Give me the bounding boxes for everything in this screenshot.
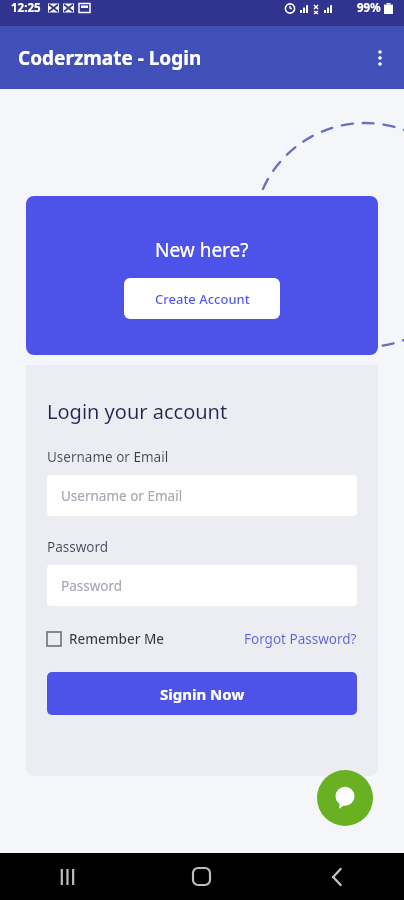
staticText: Coderzmate - Login (18, 45, 202, 71)
button[interactable]: Back (269, 853, 404, 900)
button[interactable]: Forgot Password? (244, 630, 357, 648)
button[interactable]: Remember Me (47, 630, 165, 648)
staticText: Login your account (47, 398, 228, 425)
staticText: Password (61, 577, 123, 595)
button[interactable]: Recent apps (0, 853, 134, 900)
staticText: Signin Now (160, 684, 245, 704)
button[interactable]: Home (134, 853, 269, 900)
button[interactable]: More options (356, 34, 404, 82)
staticText: 12:25 (11, 0, 41, 16)
button[interactable]: Open chat (317, 770, 373, 826)
staticText: Password (47, 538, 109, 556)
button[interactable]: Password (47, 565, 357, 606)
button[interactable]: Username or Email (47, 475, 357, 516)
staticText: 99% (357, 0, 381, 16)
staticText: New here? (155, 237, 249, 263)
staticText: Create Account (155, 290, 250, 308)
staticText: Username or Email (47, 448, 169, 466)
staticText: Username or Email (61, 487, 183, 505)
staticText: Forgot Password? (244, 630, 357, 648)
button[interactable]: Create Account (124, 278, 280, 319)
staticText: Remember Me (69, 630, 165, 648)
button[interactable]: Signin Now (47, 672, 357, 715)
